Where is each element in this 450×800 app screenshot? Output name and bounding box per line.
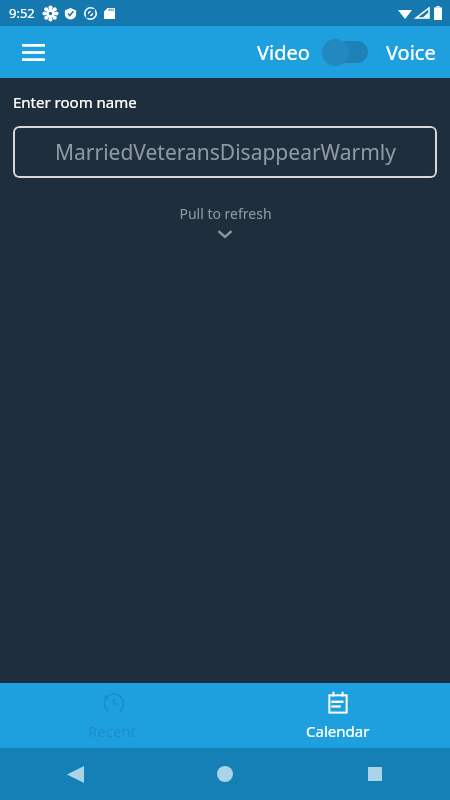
button[interactable]: Home <box>201 750 249 798</box>
button[interactable]: Back <box>51 750 99 798</box>
button[interactable]: Calendar <box>225 683 450 748</box>
button[interactable]: Toggle between video and voice <box>322 37 374 67</box>
staticText: 9:52 <box>9 4 35 22</box>
staticText: MarriedVeteransDisappearWarmly <box>55 138 396 167</box>
button[interactable]: MarriedVeteransDisappearWarmly <box>13 126 437 178</box>
button[interactable]: Open navigation menu <box>10 29 56 75</box>
staticText: Enter room name <box>13 92 137 112</box>
staticText: Recent <box>88 721 137 741</box>
button[interactable]: Video <box>257 39 310 66</box>
button[interactable]: Voice <box>386 39 436 66</box>
staticText: Pull to refresh <box>179 204 272 223</box>
button[interactable]: Recent apps <box>351 750 399 798</box>
staticText: Calendar <box>306 721 370 741</box>
